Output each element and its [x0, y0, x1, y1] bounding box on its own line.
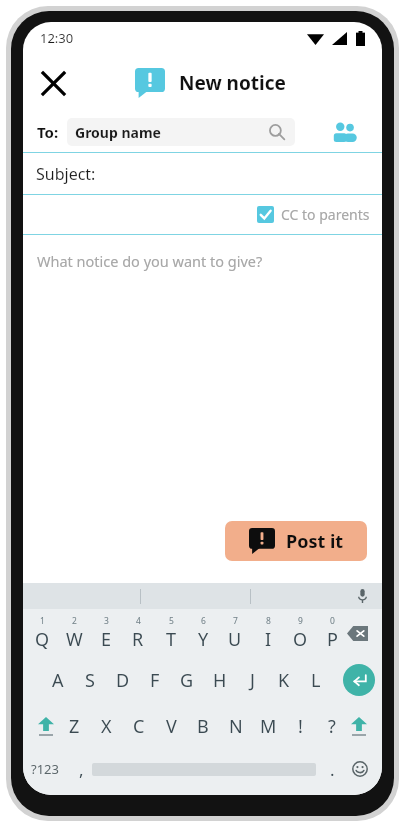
staticText: CC to parents — [281, 205, 370, 224]
button[interactable]: Enter — [343, 664, 375, 696]
button[interactable]: 1 — [26, 609, 58, 657]
staticText: P — [327, 627, 338, 652]
staticText: To: — [37, 122, 59, 142]
staticText: 1 — [40, 615, 45, 627]
staticText: F — [150, 668, 160, 693]
staticText: 7 — [233, 615, 238, 627]
staticText: Y — [198, 627, 209, 652]
staticText: V — [166, 714, 177, 739]
button[interactable]: Post it — [225, 521, 367, 561]
button[interactable]: , — [67, 749, 95, 789]
staticText: New notice — [179, 70, 286, 96]
button[interactable]: H — [204, 657, 236, 703]
staticText: R — [132, 627, 144, 652]
button[interactable]: 8 — [252, 609, 284, 657]
staticText: N — [229, 714, 243, 739]
staticText: What notice do you want to give? — [37, 251, 263, 271]
staticText: 3 — [104, 615, 109, 627]
button[interactable]: Voice input — [352, 586, 372, 606]
staticText: L — [311, 668, 321, 693]
button[interactable]: ! — [284, 703, 316, 749]
staticText: W — [66, 627, 83, 652]
button[interactable]: M — [252, 703, 284, 749]
button[interactable]: D — [107, 657, 139, 703]
staticText: ?123 — [31, 760, 59, 778]
staticText: K — [278, 668, 290, 693]
staticText: . — [330, 758, 335, 781]
staticText: 6 — [201, 615, 206, 627]
button[interactable]: Choose recipients — [324, 111, 366, 152]
button[interactable]: K — [268, 657, 300, 703]
button[interactable]: CC to parents — [257, 205, 370, 224]
button[interactable]: A — [42, 657, 74, 703]
staticText: ? — [328, 714, 336, 739]
staticText: Z — [69, 714, 80, 739]
button[interactable]: 7 — [219, 609, 251, 657]
staticText: 5 — [169, 615, 174, 627]
staticText: I — [265, 627, 272, 652]
staticText: A — [52, 668, 64, 693]
button[interactable]: C — [123, 703, 155, 749]
staticText: M — [260, 714, 277, 739]
staticText: U — [228, 627, 242, 652]
button[interactable]: ? — [316, 703, 348, 749]
staticText: G — [180, 668, 194, 693]
button[interactable]: L — [300, 657, 332, 703]
staticText: X — [101, 714, 112, 739]
button[interactable]: Subject: — [23, 153, 382, 194]
button[interactable]: 4 — [122, 609, 154, 657]
staticText: Post it — [286, 529, 344, 554]
staticText: 9 — [298, 615, 303, 627]
button[interactable]: J — [236, 657, 268, 703]
staticText: , — [79, 758, 84, 781]
staticText: Q — [35, 627, 50, 652]
button[interactable]: 2 — [58, 609, 90, 657]
button[interactable]: Shift — [342, 706, 376, 746]
staticText: B — [197, 714, 209, 739]
staticText: 0 — [330, 615, 335, 627]
button[interactable]: 3 — [90, 609, 122, 657]
staticText: 8 — [266, 615, 271, 627]
button[interactable]: ?123 — [25, 749, 65, 789]
button[interactable]: F — [139, 657, 171, 703]
staticText: S — [85, 668, 95, 693]
button[interactable]: Backspace — [340, 613, 374, 653]
staticText: J — [250, 668, 255, 693]
button[interactable]: 6 — [187, 609, 219, 657]
button[interactable]: Z — [58, 703, 90, 749]
staticText: Group name — [75, 123, 161, 142]
staticText: E — [101, 627, 112, 652]
staticText: 2 — [72, 615, 77, 627]
staticText: D — [116, 668, 130, 693]
button[interactable]: 0 — [316, 609, 348, 657]
staticText: C — [133, 714, 145, 739]
button[interactable]: N — [220, 703, 252, 749]
staticText: Subject: — [36, 163, 96, 185]
button[interactable]: 5 — [155, 609, 187, 657]
button[interactable]: Close — [31, 61, 75, 105]
staticText: T — [166, 627, 177, 652]
button[interactable]: G — [171, 657, 203, 703]
button[interactable]: X — [90, 703, 122, 749]
staticText: ! — [298, 714, 303, 739]
staticText: H — [213, 668, 227, 693]
staticText: 12:30 — [40, 29, 74, 47]
button[interactable]: B — [187, 703, 219, 749]
button[interactable]: Shift — [29, 706, 63, 746]
staticText: 4 — [136, 615, 141, 627]
button[interactable]: Emoji — [346, 755, 374, 783]
staticText: O — [293, 627, 308, 652]
button[interactable]: V — [155, 703, 187, 749]
button[interactable]: S — [74, 657, 106, 703]
button[interactable]: What notice do you want to give? — [23, 235, 382, 583]
button[interactable]: . — [318, 749, 346, 789]
button[interactable]: Group name — [67, 118, 295, 146]
button[interactable]: 9 — [284, 609, 316, 657]
